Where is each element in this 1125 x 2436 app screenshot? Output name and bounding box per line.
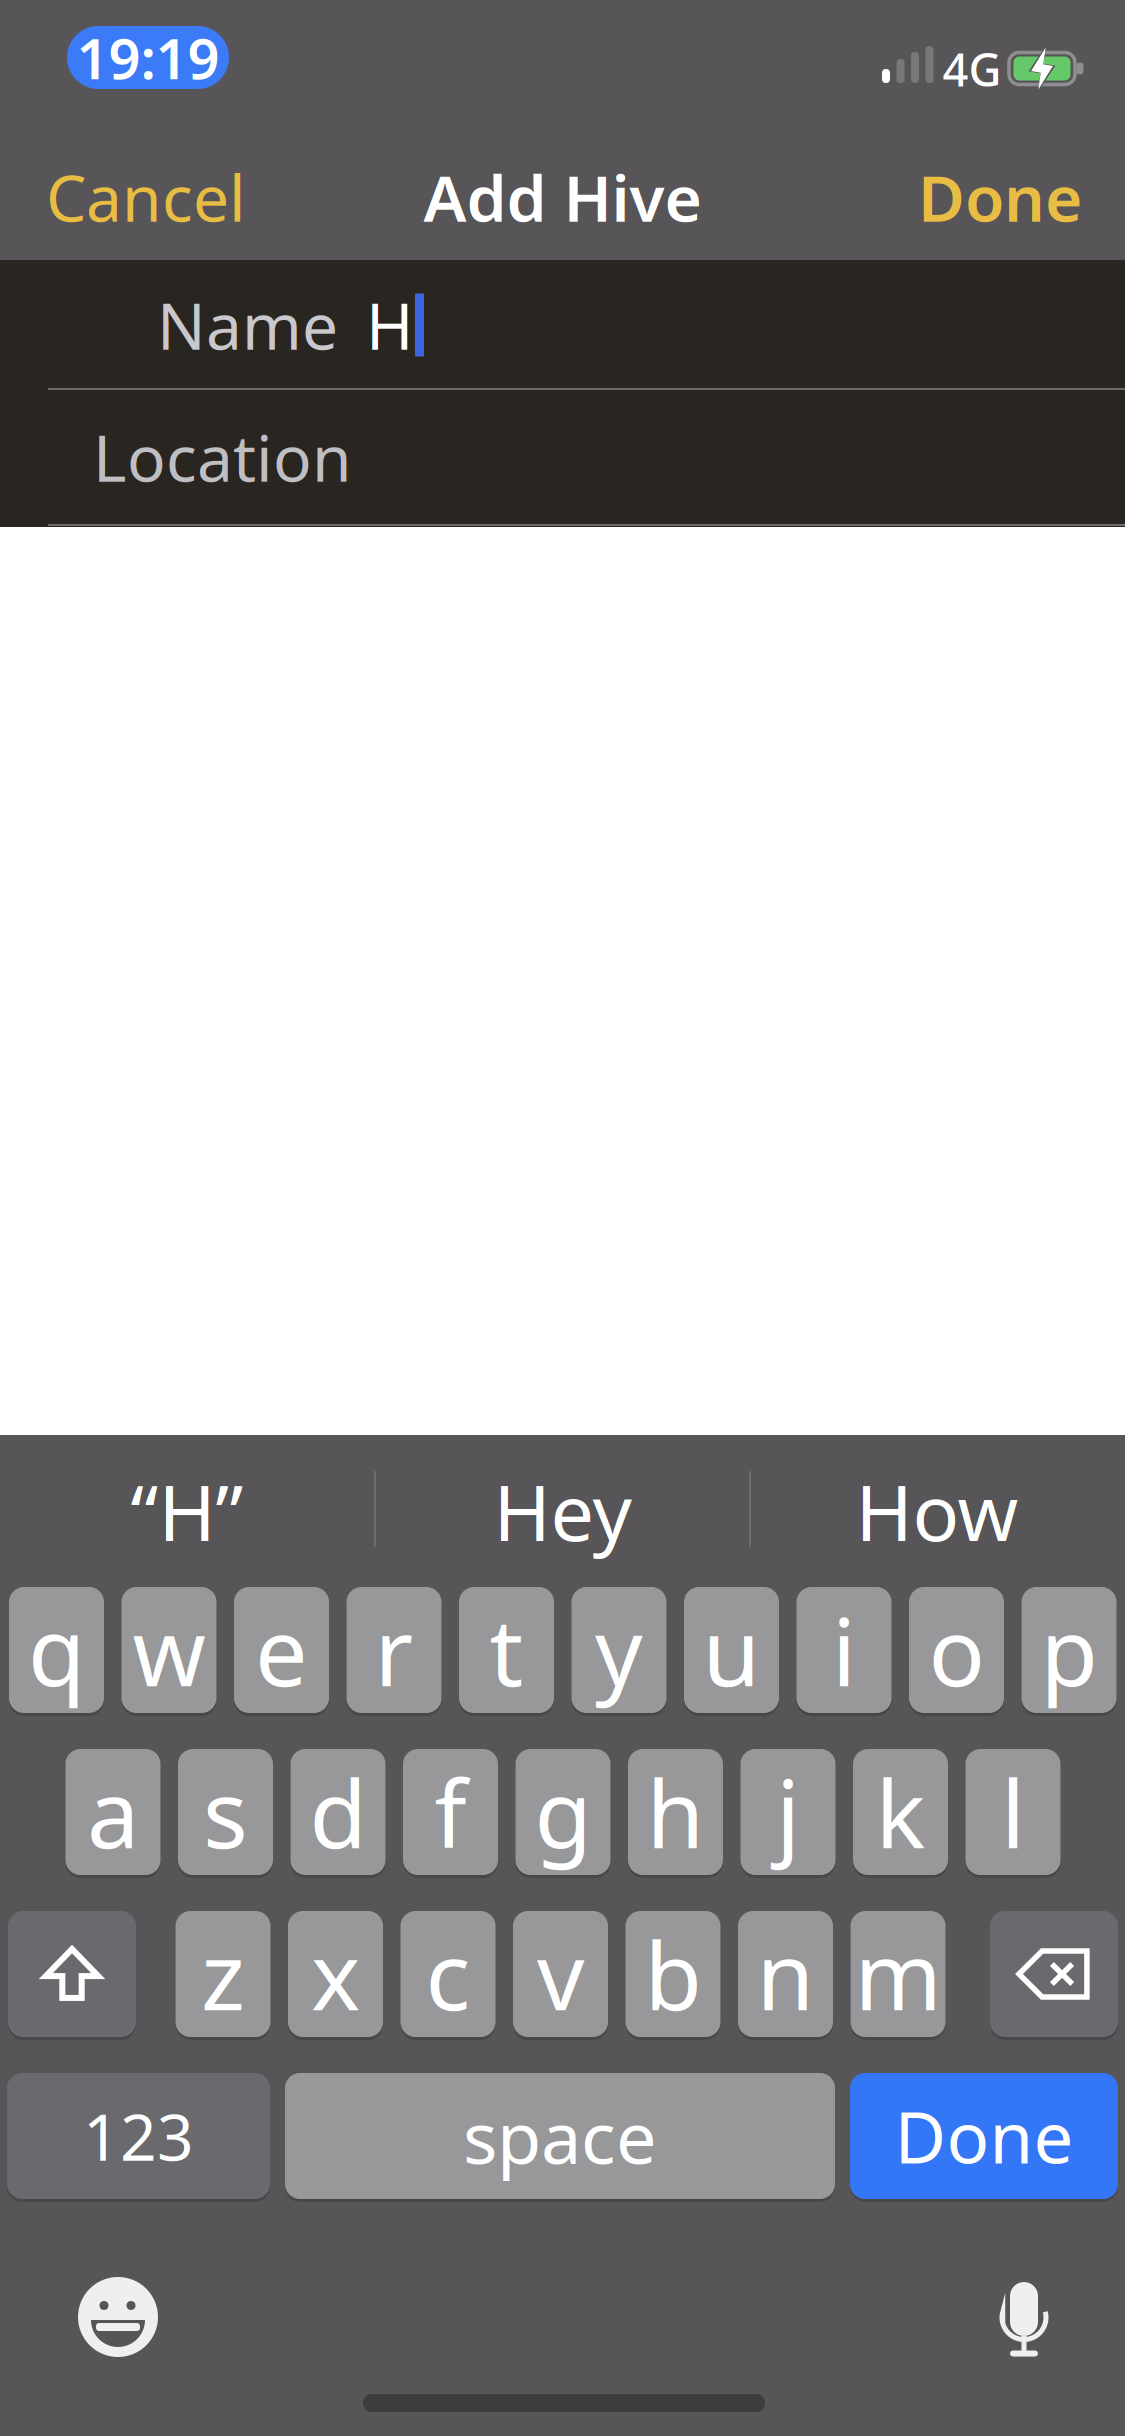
- button[interactable]: w: [121, 1585, 216, 1715]
- button[interactable]: Hey: [382, 1441, 742, 1581]
- button[interactable]: x: [288, 1909, 383, 2039]
- button[interactable]: 123: [7, 2071, 270, 2201]
- staticText: 123: [83, 2093, 194, 2178]
- button[interactable]: Shift: [8, 1909, 136, 2039]
- staticText: k: [875, 1750, 925, 1874]
- staticText: t: [489, 1588, 523, 1712]
- staticText: f: [434, 1750, 466, 1874]
- staticText: b: [644, 1912, 701, 2036]
- staticText: h: [646, 1750, 704, 1874]
- button[interactable]: n: [738, 1909, 833, 2039]
- button[interactable]: Location field: [0, 392, 1125, 522]
- staticText: “H”: [130, 1460, 243, 1562]
- button[interactable]: t: [459, 1585, 554, 1715]
- button[interactable]: m: [850, 1909, 945, 2039]
- button[interactable]: b: [625, 1909, 720, 2039]
- button[interactable]: space: [285, 2071, 835, 2201]
- staticText: space: [463, 2088, 657, 2184]
- staticText: x: [311, 1912, 360, 2036]
- staticText: w: [132, 1588, 205, 1712]
- button[interactable]: How: [757, 1441, 1117, 1581]
- button[interactable]: p: [1021, 1585, 1116, 1715]
- button[interactable]: j: [740, 1747, 835, 1877]
- staticText: 19:19: [76, 20, 219, 95]
- staticText: Location: [93, 414, 352, 499]
- button[interactable]: “H”: [7, 1441, 367, 1581]
- staticText: l: [1001, 1750, 1025, 1874]
- button[interactable]: y: [571, 1585, 666, 1715]
- staticText: v: [537, 1912, 584, 2036]
- staticText: p: [1040, 1588, 1097, 1712]
- button[interactable]: v: [513, 1909, 608, 2039]
- button[interactable]: Delete: [990, 1909, 1118, 2039]
- button[interactable]: q: [9, 1585, 104, 1715]
- button[interactable]: i: [796, 1585, 891, 1715]
- staticText: j: [776, 1750, 800, 1874]
- button[interactable]: o: [909, 1585, 1004, 1715]
- staticText: i: [832, 1588, 856, 1712]
- button[interactable]: s: [178, 1747, 273, 1877]
- staticText: a: [87, 1750, 139, 1874]
- button[interactable]: Done: [850, 2071, 1118, 2201]
- button[interactable]: a: [65, 1747, 160, 1877]
- button[interactable]: d: [290, 1747, 385, 1877]
- staticText: o: [928, 1588, 984, 1712]
- staticText: Cancel: [46, 154, 246, 239]
- staticText: s: [203, 1750, 248, 1874]
- button[interactable]: c: [400, 1909, 495, 2039]
- staticText: m: [854, 1912, 941, 2036]
- button[interactable]: Dictation: [994, 2282, 1054, 2358]
- button[interactable]: Name field: [0, 261, 1125, 389]
- button[interactable]: k: [853, 1747, 948, 1877]
- staticText: y: [595, 1588, 643, 1712]
- staticText: z: [201, 1912, 245, 2036]
- staticText: c: [425, 1912, 470, 2036]
- button[interactable]: e: [234, 1585, 329, 1715]
- staticText: How: [855, 1460, 1018, 1562]
- button[interactable]: l: [965, 1747, 1060, 1877]
- button[interactable]: Cancel: [46, 154, 246, 239]
- button[interactable]: h: [628, 1747, 723, 1877]
- button[interactable]: g: [515, 1747, 610, 1877]
- button[interactable]: z: [175, 1909, 270, 2039]
- button[interactable]: u: [684, 1585, 779, 1715]
- staticText: q: [28, 1588, 85, 1712]
- button[interactable]: Time: [67, 26, 229, 89]
- staticText: Done: [918, 154, 1082, 239]
- staticText: d: [309, 1750, 366, 1874]
- button[interactable]: f: [403, 1747, 498, 1877]
- staticText: Hey: [493, 1460, 631, 1562]
- button[interactable]: Done: [918, 154, 1082, 239]
- button[interactable]: Emoji: [78, 2277, 158, 2357]
- staticText: g: [534, 1750, 591, 1874]
- staticText: 4G: [942, 39, 1001, 99]
- staticText: Add Hive: [423, 154, 701, 239]
- staticText: n: [756, 1912, 814, 2036]
- staticText: r: [374, 1588, 413, 1712]
- staticText: Name: [157, 282, 338, 367]
- staticText: Done: [894, 2089, 1073, 2183]
- button[interactable]: r: [346, 1585, 441, 1715]
- staticText: e: [255, 1588, 308, 1712]
- staticText: u: [702, 1588, 760, 1712]
- staticText: H: [366, 282, 413, 367]
